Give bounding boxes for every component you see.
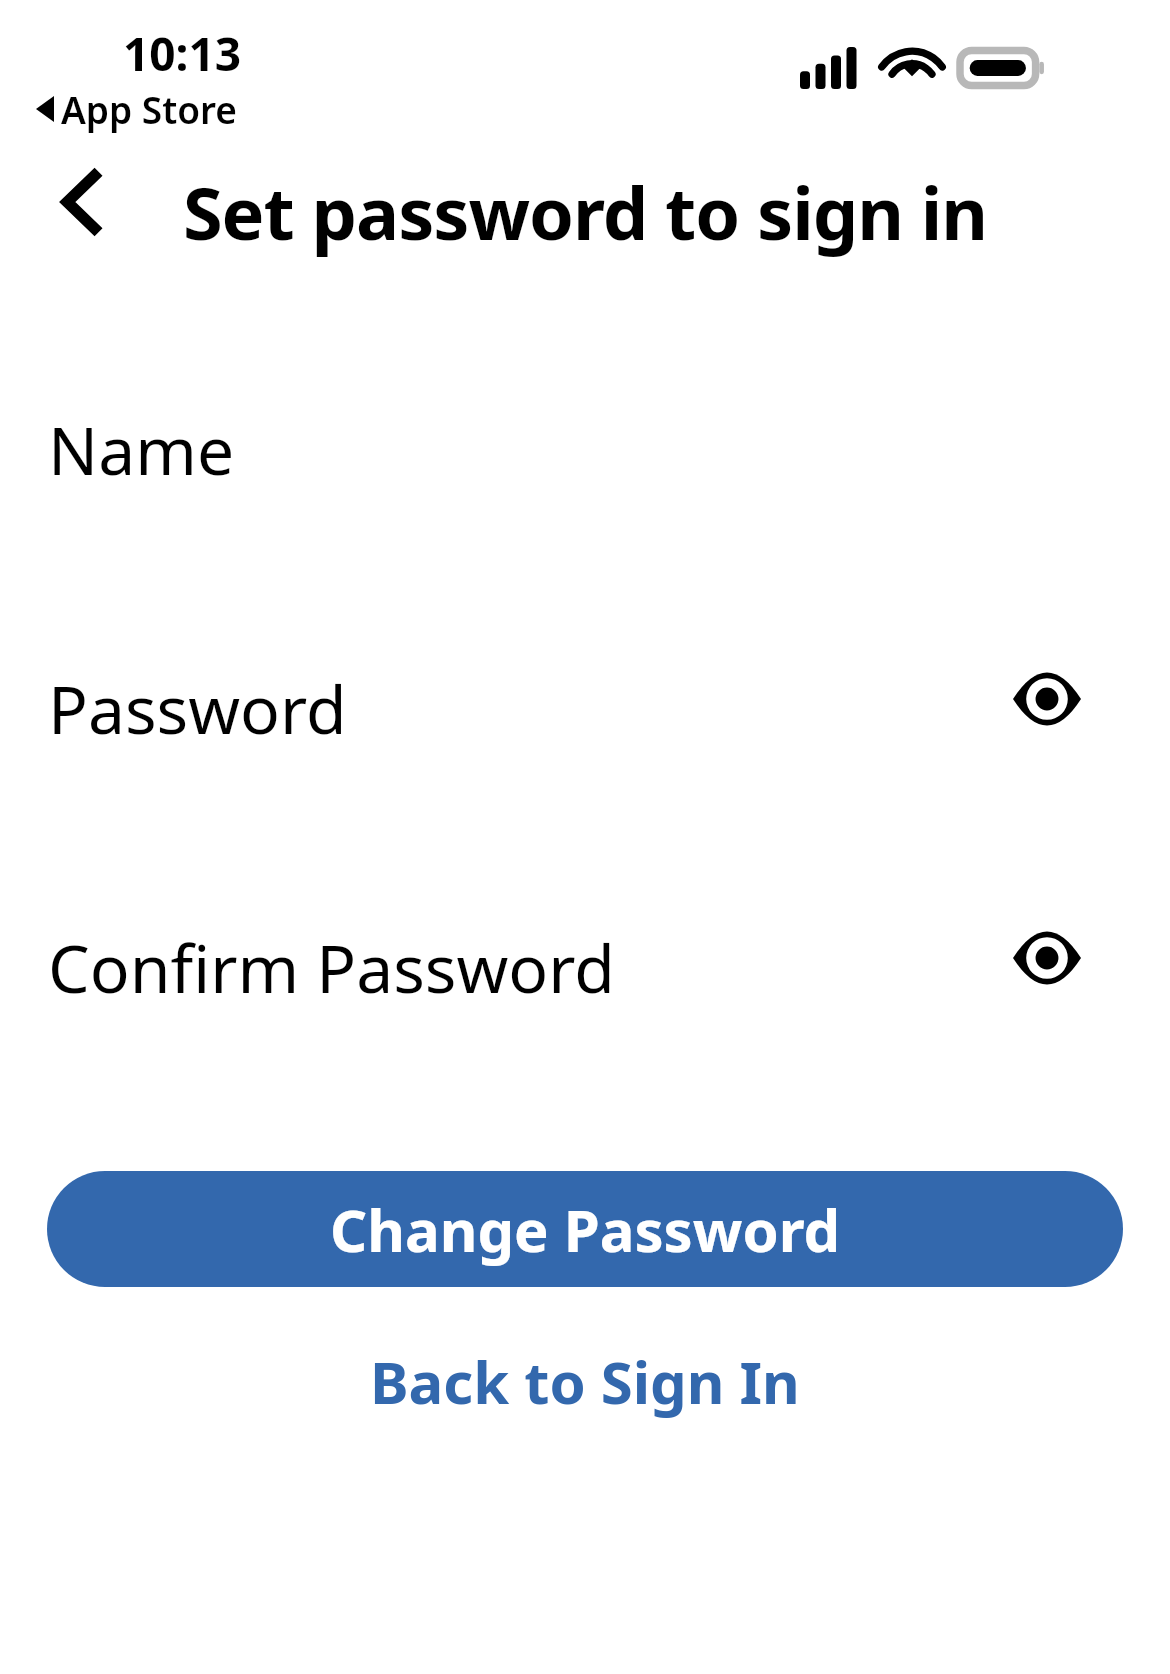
button[interactable]: Show password xyxy=(1011,663,1083,735)
button[interactable]: App Store xyxy=(36,84,237,134)
button[interactable]: Back xyxy=(30,152,130,252)
staticText: Back to Sign In xyxy=(370,1342,800,1421)
staticText: Confirm Password xyxy=(48,922,615,994)
button[interactable]: Change Password xyxy=(47,1171,1123,1287)
staticText: Set password to sign in xyxy=(0,163,1170,261)
button[interactable]: Show password xyxy=(1011,922,1083,994)
button[interactable]: Password xyxy=(0,663,1170,735)
button[interactable]: Confirm Password xyxy=(0,922,1170,994)
staticText: App Store xyxy=(61,84,237,134)
staticText: Password xyxy=(48,663,347,735)
staticText: Name xyxy=(48,404,235,476)
staticText: Change Password xyxy=(330,1190,841,1269)
button[interactable]: Name xyxy=(0,404,1170,476)
staticText: 10:13 xyxy=(123,22,242,85)
button[interactable]: Back to Sign In xyxy=(0,1331,1170,1431)
